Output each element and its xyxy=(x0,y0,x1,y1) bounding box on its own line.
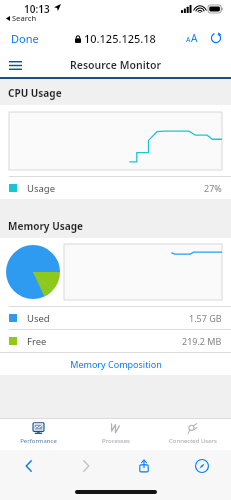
button[interactable]: Connected Users xyxy=(154,419,231,450)
button[interactable]: Processes xyxy=(77,419,154,450)
staticText: 10.125.125.18 xyxy=(84,31,156,46)
button[interactable]: Memory Composition xyxy=(0,353,231,375)
button[interactable]: Performance xyxy=(0,419,77,450)
staticText: Free xyxy=(27,335,47,348)
staticText: Used xyxy=(27,312,50,325)
button[interactable]: 10.125.125.18 xyxy=(69,28,162,49)
staticText: Search xyxy=(12,13,37,23)
staticText: Connected Users xyxy=(169,437,217,445)
button[interactable]: Forward xyxy=(57,450,115,482)
button[interactable]: Bookmarks xyxy=(173,450,231,482)
staticText: A xyxy=(186,35,191,45)
button[interactable]: Used xyxy=(0,307,231,329)
staticText: 10:13 xyxy=(24,2,50,16)
staticText: Processes xyxy=(102,437,130,445)
staticText: Memory Usage xyxy=(8,219,84,233)
button[interactable]: Menu xyxy=(5,55,25,75)
staticText: Usage xyxy=(27,182,56,195)
staticText: Done xyxy=(11,31,39,46)
button[interactable]: Share xyxy=(115,450,173,482)
button[interactable]: A xyxy=(183,28,201,48)
button[interactable]: Reload xyxy=(207,29,225,47)
staticText: A xyxy=(191,31,198,45)
button[interactable]: Done xyxy=(6,28,44,49)
staticText: 219.2 MB xyxy=(182,335,222,347)
staticText: Performance xyxy=(20,437,57,445)
staticText: 1.57 GB xyxy=(189,312,222,324)
staticText: CPU Usage xyxy=(8,86,62,100)
staticText: Memory Composition xyxy=(70,358,162,370)
button[interactable]: Back xyxy=(0,450,57,482)
staticText: 27% xyxy=(204,182,222,194)
button[interactable]: Free xyxy=(0,330,231,352)
button[interactable]: Usage xyxy=(0,177,231,199)
staticText: Resource Monitor xyxy=(70,58,161,72)
